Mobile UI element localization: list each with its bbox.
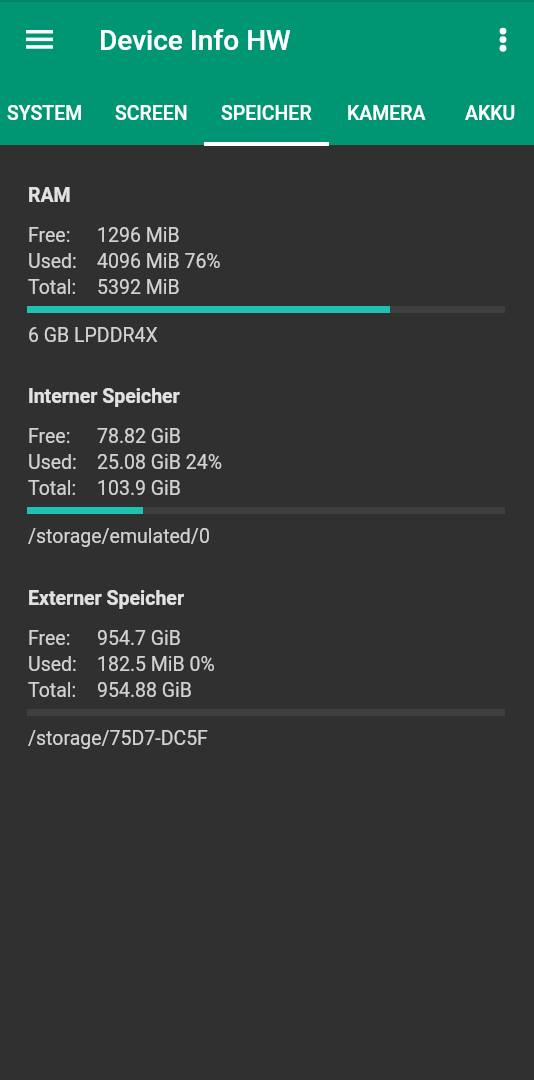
button[interactable]: SYSTEM — [0, 81, 98, 146]
button[interactable]: KAMERA — [329, 81, 443, 146]
staticText: /storage/emulated/0 — [28, 525, 210, 548]
staticText: Externer Speicher — [28, 587, 185, 610]
button[interactable]: SCREEN — [98, 81, 204, 146]
staticText: AKKU — [465, 102, 516, 125]
staticText: SCREEN — [115, 102, 188, 125]
staticText: Interner Speicher — [28, 385, 180, 408]
staticText: Total: — [28, 679, 77, 702]
staticText: SPEICHER — [221, 102, 312, 125]
staticText: Device Info HW — [99, 24, 291, 57]
button[interactable]: More options — [479, 16, 527, 64]
staticText: KAMERA — [347, 102, 426, 125]
staticText: Free: — [28, 425, 71, 448]
staticText: 954.88 GiB — [97, 679, 192, 702]
staticText: Used: — [28, 250, 77, 273]
staticText: 103.9 GiB — [97, 477, 181, 500]
staticText: /storage/75D7-DC5F — [28, 727, 208, 750]
staticText: Used: — [28, 451, 77, 474]
button[interactable]: Open navigation menu — [15, 16, 63, 64]
staticText: Free: — [28, 224, 71, 247]
staticText: RAM — [28, 184, 71, 207]
staticText: Used: — [28, 653, 77, 676]
staticText: 6 GB LPDDR4X — [28, 324, 158, 347]
staticText: Free: — [28, 627, 71, 650]
staticText: 25.08 GiB 24% — [97, 451, 223, 474]
staticText: SYSTEM — [7, 102, 83, 125]
staticText: 5392 MiB — [97, 276, 180, 299]
staticText: 182.5 MiB 0% — [97, 653, 215, 676]
staticText: 1296 MiB — [97, 224, 180, 247]
staticText: Total: — [28, 276, 77, 299]
staticText: 4096 MiB 76% — [97, 250, 221, 273]
button[interactable]: SPEICHER — [204, 81, 329, 146]
staticText: Total: — [28, 477, 77, 500]
staticText: 954.7 GiB — [97, 627, 181, 650]
button[interactable]: AKKU — [443, 81, 534, 146]
staticText: 78.82 GiB — [97, 425, 181, 448]
